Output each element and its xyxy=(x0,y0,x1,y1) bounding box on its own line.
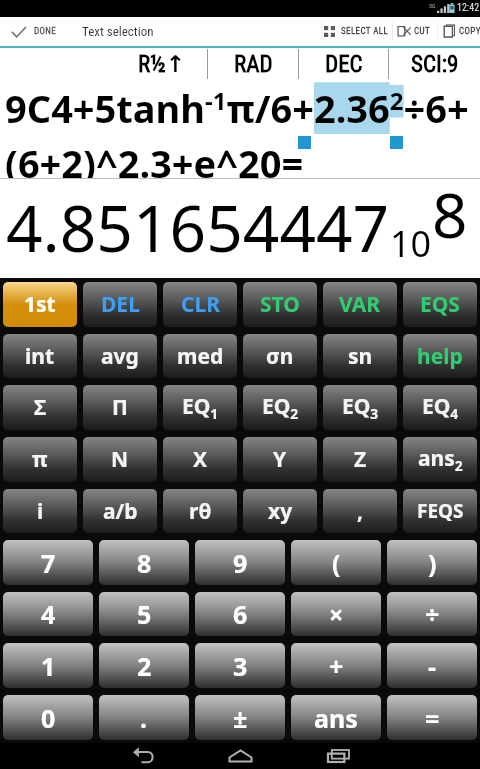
button[interactable]: rθ xyxy=(163,489,237,533)
staticText: STO xyxy=(260,290,300,319)
button[interactable]: R½↑ xyxy=(116,48,207,80)
staticText: ) xyxy=(428,546,437,580)
staticText: σn xyxy=(266,342,294,371)
staticText: RAD xyxy=(234,51,273,78)
staticText: 8 xyxy=(137,546,152,580)
button[interactable]: Z xyxy=(323,437,397,482)
button[interactable]: RAD xyxy=(208,48,298,80)
button[interactable]: 7 xyxy=(3,540,93,585)
button[interactable]: 2 xyxy=(99,643,189,688)
button[interactable]: DEC xyxy=(299,48,388,80)
staticText: xy xyxy=(268,497,293,526)
staticText: EQ1 xyxy=(182,392,219,423)
button[interactable]: 1 xyxy=(3,643,93,688)
staticText: Π xyxy=(112,393,128,422)
staticText: 8 xyxy=(432,172,468,256)
button[interactable]: EQ2 xyxy=(243,385,317,430)
button[interactable]: EQ3 xyxy=(323,385,397,430)
staticText: ans xyxy=(314,701,358,735)
staticText: a/b xyxy=(103,497,138,526)
button[interactable]: , xyxy=(323,489,397,533)
staticText: R½↑ xyxy=(138,51,186,78)
button[interactable]: 4 xyxy=(3,592,93,636)
button[interactable]: Π xyxy=(83,385,157,430)
staticText: 1st xyxy=(24,290,56,319)
button[interactable]: EQ4 xyxy=(403,385,477,430)
staticText: DEC xyxy=(325,51,363,78)
button[interactable]: EQS xyxy=(403,282,477,327)
button[interactable]: . xyxy=(99,695,189,740)
staticText: 7 xyxy=(41,546,56,580)
staticText: i xyxy=(37,497,44,526)
button[interactable]: × xyxy=(291,592,381,636)
button[interactable]: EQ1 xyxy=(163,385,237,430)
button[interactable]: med xyxy=(163,334,237,378)
staticText: 0 xyxy=(41,701,56,735)
button[interactable]: CUT xyxy=(396,17,431,46)
button[interactable]: Recents xyxy=(298,743,378,769)
staticText: 12:42 xyxy=(457,2,480,14)
button[interactable]: Σ xyxy=(3,385,77,430)
button[interactable]: X xyxy=(163,437,237,482)
staticText: 1 xyxy=(41,649,56,683)
button[interactable]: int xyxy=(3,334,77,378)
staticText: ÷ xyxy=(425,597,440,631)
button[interactable]: π xyxy=(3,437,77,482)
staticText: ( xyxy=(332,546,341,580)
staticText: ans2 xyxy=(418,444,463,475)
button[interactable]: 0 xyxy=(3,695,93,740)
staticText: Z xyxy=(354,445,367,474)
button[interactable]: DONE xyxy=(4,17,65,46)
button[interactable]: STO xyxy=(243,282,317,327)
staticText: CLR xyxy=(181,290,220,319)
button[interactable]: 5 xyxy=(99,592,189,636)
button[interactable]: COPY xyxy=(441,17,480,46)
staticText: - xyxy=(428,649,437,683)
staticText: rθ xyxy=(189,497,212,526)
button[interactable]: Back xyxy=(103,743,183,769)
button[interactable]: ÷ xyxy=(387,592,477,636)
button[interactable]: VAR xyxy=(323,282,397,327)
button[interactable]: σn xyxy=(243,334,317,378)
button[interactable]: xy xyxy=(243,489,317,533)
button[interactable]: CLR xyxy=(163,282,237,327)
button[interactable]: i xyxy=(3,489,77,533)
button[interactable]: SCI:9 xyxy=(389,48,480,80)
button[interactable]: ans2 xyxy=(403,437,477,482)
button[interactable]: sn xyxy=(323,334,397,378)
button[interactable]: ( xyxy=(291,540,381,585)
button[interactable]: Y xyxy=(243,437,317,482)
button[interactable]: help xyxy=(403,334,477,378)
button[interactable]: 9 xyxy=(195,540,285,585)
staticText: 4.851654447 xyxy=(6,184,390,271)
button[interactable]: 8 xyxy=(99,540,189,585)
button[interactable]: DEL xyxy=(83,282,157,327)
staticText: EQ4 xyxy=(422,392,459,423)
button[interactable]: + xyxy=(291,643,381,688)
staticText: 3 xyxy=(233,649,248,683)
button[interactable]: FEQS xyxy=(403,489,477,533)
button[interactable]: 1st xyxy=(3,282,77,327)
button[interactable]: N xyxy=(83,437,157,482)
staticText: Y xyxy=(273,445,287,474)
button[interactable]: SELECT ALL xyxy=(322,17,389,46)
staticText: X xyxy=(193,445,208,474)
staticText: EQS xyxy=(420,290,460,319)
button[interactable]: ans xyxy=(291,695,381,740)
staticText: × xyxy=(329,597,344,631)
button[interactable]: 3 xyxy=(195,643,285,688)
staticText: + xyxy=(329,649,344,683)
button[interactable]: - xyxy=(387,643,477,688)
button[interactable]: 6 xyxy=(195,592,285,636)
staticText: int xyxy=(25,342,55,371)
staticText: VAR xyxy=(339,290,381,319)
button[interactable]: ± xyxy=(195,695,285,740)
button[interactable]: ) xyxy=(387,540,477,585)
button[interactable]: avg xyxy=(83,334,157,378)
staticText: 2 xyxy=(137,649,152,683)
button[interactable]: a/b xyxy=(83,489,157,533)
staticText: ± xyxy=(233,701,248,735)
button[interactable]: = xyxy=(387,695,477,740)
button[interactable]: Home xyxy=(200,743,280,769)
staticText: SCI:9 xyxy=(411,51,459,78)
